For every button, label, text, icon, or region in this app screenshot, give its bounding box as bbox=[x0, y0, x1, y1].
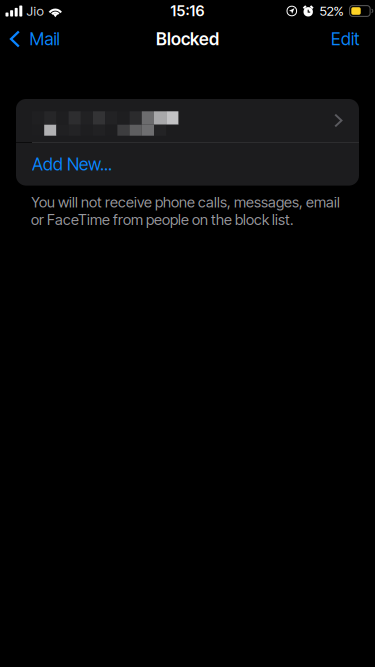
button[interactable]: Add New... bbox=[16, 143, 359, 186]
staticText: Add New... bbox=[32, 154, 112, 174]
staticText: You will not receive phone calls, messag… bbox=[31, 194, 340, 228]
staticText: 52% bbox=[320, 3, 344, 19]
staticText: Edit bbox=[331, 29, 359, 49]
staticText: 15:16 bbox=[170, 2, 204, 20]
staticText: Jio bbox=[26, 3, 43, 19]
staticText: Mail bbox=[29, 29, 59, 49]
button[interactable]: Blocked contact bbox=[16, 99, 359, 142]
button[interactable]: Mail bbox=[0, 22, 67, 56]
button[interactable]: Edit bbox=[315, 22, 375, 56]
staticText: Blocked bbox=[156, 29, 219, 49]
